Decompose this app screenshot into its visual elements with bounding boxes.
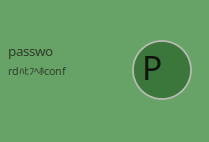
staticText: P [142, 45, 162, 89]
button[interactable]: Profile [133, 41, 191, 99]
staticText: passwo [8, 42, 53, 60]
staticText: rdﾊﾋﾌﾍﾎconf [8, 64, 66, 78]
